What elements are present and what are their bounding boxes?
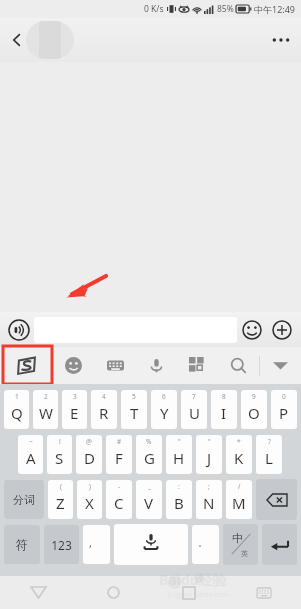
button[interactable]: _ (136, 480, 162, 519)
button[interactable]: 8 (211, 390, 237, 429)
button[interactable]: Space (114, 524, 188, 565)
button[interactable]: More tools (177, 347, 218, 384)
staticText: 分词 (13, 493, 35, 507)
button[interactable]: ( (48, 480, 73, 519)
button[interactable]: ) (77, 480, 102, 519)
button[interactable]: Search (218, 347, 259, 384)
button[interactable]: 3 (62, 390, 87, 429)
staticText: ~ (29, 437, 33, 446)
button[interactable]: Home (76, 576, 151, 609)
button[interactable]: @ (76, 435, 102, 474)
staticText: Q (11, 403, 23, 423)
button[interactable]: Keyboard layout (94, 347, 136, 384)
button[interactable]: Emoji (237, 315, 267, 345)
staticText: A (26, 448, 36, 468)
button[interactable]: , (83, 525, 110, 564)
button[interactable]: Add (267, 315, 297, 345)
staticText: F (115, 448, 123, 468)
staticText: * (237, 437, 241, 446)
staticText: V (144, 493, 154, 513)
button[interactable]: Enter (262, 524, 297, 565)
staticText: I (221, 403, 227, 423)
staticText: % (146, 437, 152, 446)
staticText: G (144, 448, 155, 468)
staticText: 1 (15, 392, 19, 401)
button[interactable]: 0 (271, 390, 297, 429)
button[interactable]: * (226, 435, 252, 474)
staticText: R (99, 403, 109, 423)
staticText: 7 (192, 392, 196, 401)
staticText: C (114, 493, 124, 513)
staticText: ( (60, 482, 62, 491)
button[interactable]: ? (256, 435, 282, 474)
button[interactable]: Emoticons (52, 347, 94, 384)
button[interactable]: Delete (256, 479, 297, 520)
button[interactable]: Back (0, 576, 76, 609)
staticText: # (117, 437, 122, 446)
button[interactable]: % (136, 435, 162, 474)
staticText: Baidu经验 (159, 570, 227, 589)
button[interactable]: " (166, 435, 192, 474)
staticText: P (279, 403, 289, 423)
staticText: @ (86, 437, 92, 446)
button[interactable]: 123 (44, 525, 79, 564)
button[interactable]: Recents (151, 576, 226, 609)
staticText: ? (268, 437, 271, 446)
button[interactable]: 5 (121, 390, 147, 429)
button[interactable]: ; (196, 480, 222, 519)
staticText: 5 (132, 392, 136, 401)
staticText: B (174, 493, 184, 513)
button[interactable]: 1 (4, 390, 29, 429)
button[interactable]: 2 (33, 390, 58, 429)
staticText: _ (148, 482, 151, 491)
staticText: 123 (51, 537, 72, 553)
staticText: 中 (232, 531, 243, 545)
button[interactable]: Back (0, 23, 34, 57)
staticText: 0 (282, 392, 286, 401)
staticText: O (248, 403, 260, 423)
staticText: D (84, 448, 95, 468)
staticText: - (118, 482, 121, 491)
staticText: X (85, 493, 94, 513)
button[interactable]: Voice (136, 347, 177, 384)
staticText: 英 (241, 549, 248, 558)
button[interactable]: 中 (223, 524, 258, 565)
button[interactable]: Hide keyboard (260, 347, 301, 384)
staticText: jingyan.baidu.com (168, 590, 229, 600)
button[interactable]: ~ (18, 435, 43, 474)
staticText: 3 (73, 392, 77, 401)
button[interactable]: Switch keyboard (226, 576, 301, 609)
staticText: N (203, 493, 215, 513)
button[interactable]: " (196, 435, 222, 474)
button[interactable]: : (166, 480, 192, 519)
staticText: : (178, 482, 180, 491)
staticText: 0 K/s (144, 3, 164, 15)
staticText: ! (59, 437, 61, 446)
button[interactable]: 7 (181, 390, 207, 429)
staticText: " (208, 437, 211, 446)
staticText: 中午12:49 (254, 3, 296, 15)
button[interactable]: Sogou input (0, 347, 52, 384)
staticText: U (189, 403, 200, 423)
staticText: E (70, 403, 79, 423)
staticText: M (232, 493, 246, 513)
button[interactable]: 。 (192, 525, 219, 564)
button[interactable]: 4 (91, 390, 117, 429)
staticText: L (265, 448, 273, 468)
staticText: Y (160, 403, 169, 423)
button[interactable]: Voice input (4, 315, 34, 345)
staticText: " (178, 437, 181, 446)
button[interactable]: 符 (4, 525, 40, 564)
button[interactable]: / (226, 480, 252, 519)
button[interactable]: 6 (151, 390, 177, 429)
staticText: H (173, 448, 185, 468)
staticText: ) (89, 482, 91, 491)
button[interactable]: 9 (241, 390, 267, 429)
button[interactable]: ! (47, 435, 72, 474)
button[interactable]: More options (261, 20, 301, 60)
button[interactable]: 分词 (4, 480, 44, 519)
staticText: 。 (198, 537, 207, 548)
button[interactable]: - (106, 480, 132, 519)
button[interactable]: # (106, 435, 132, 474)
